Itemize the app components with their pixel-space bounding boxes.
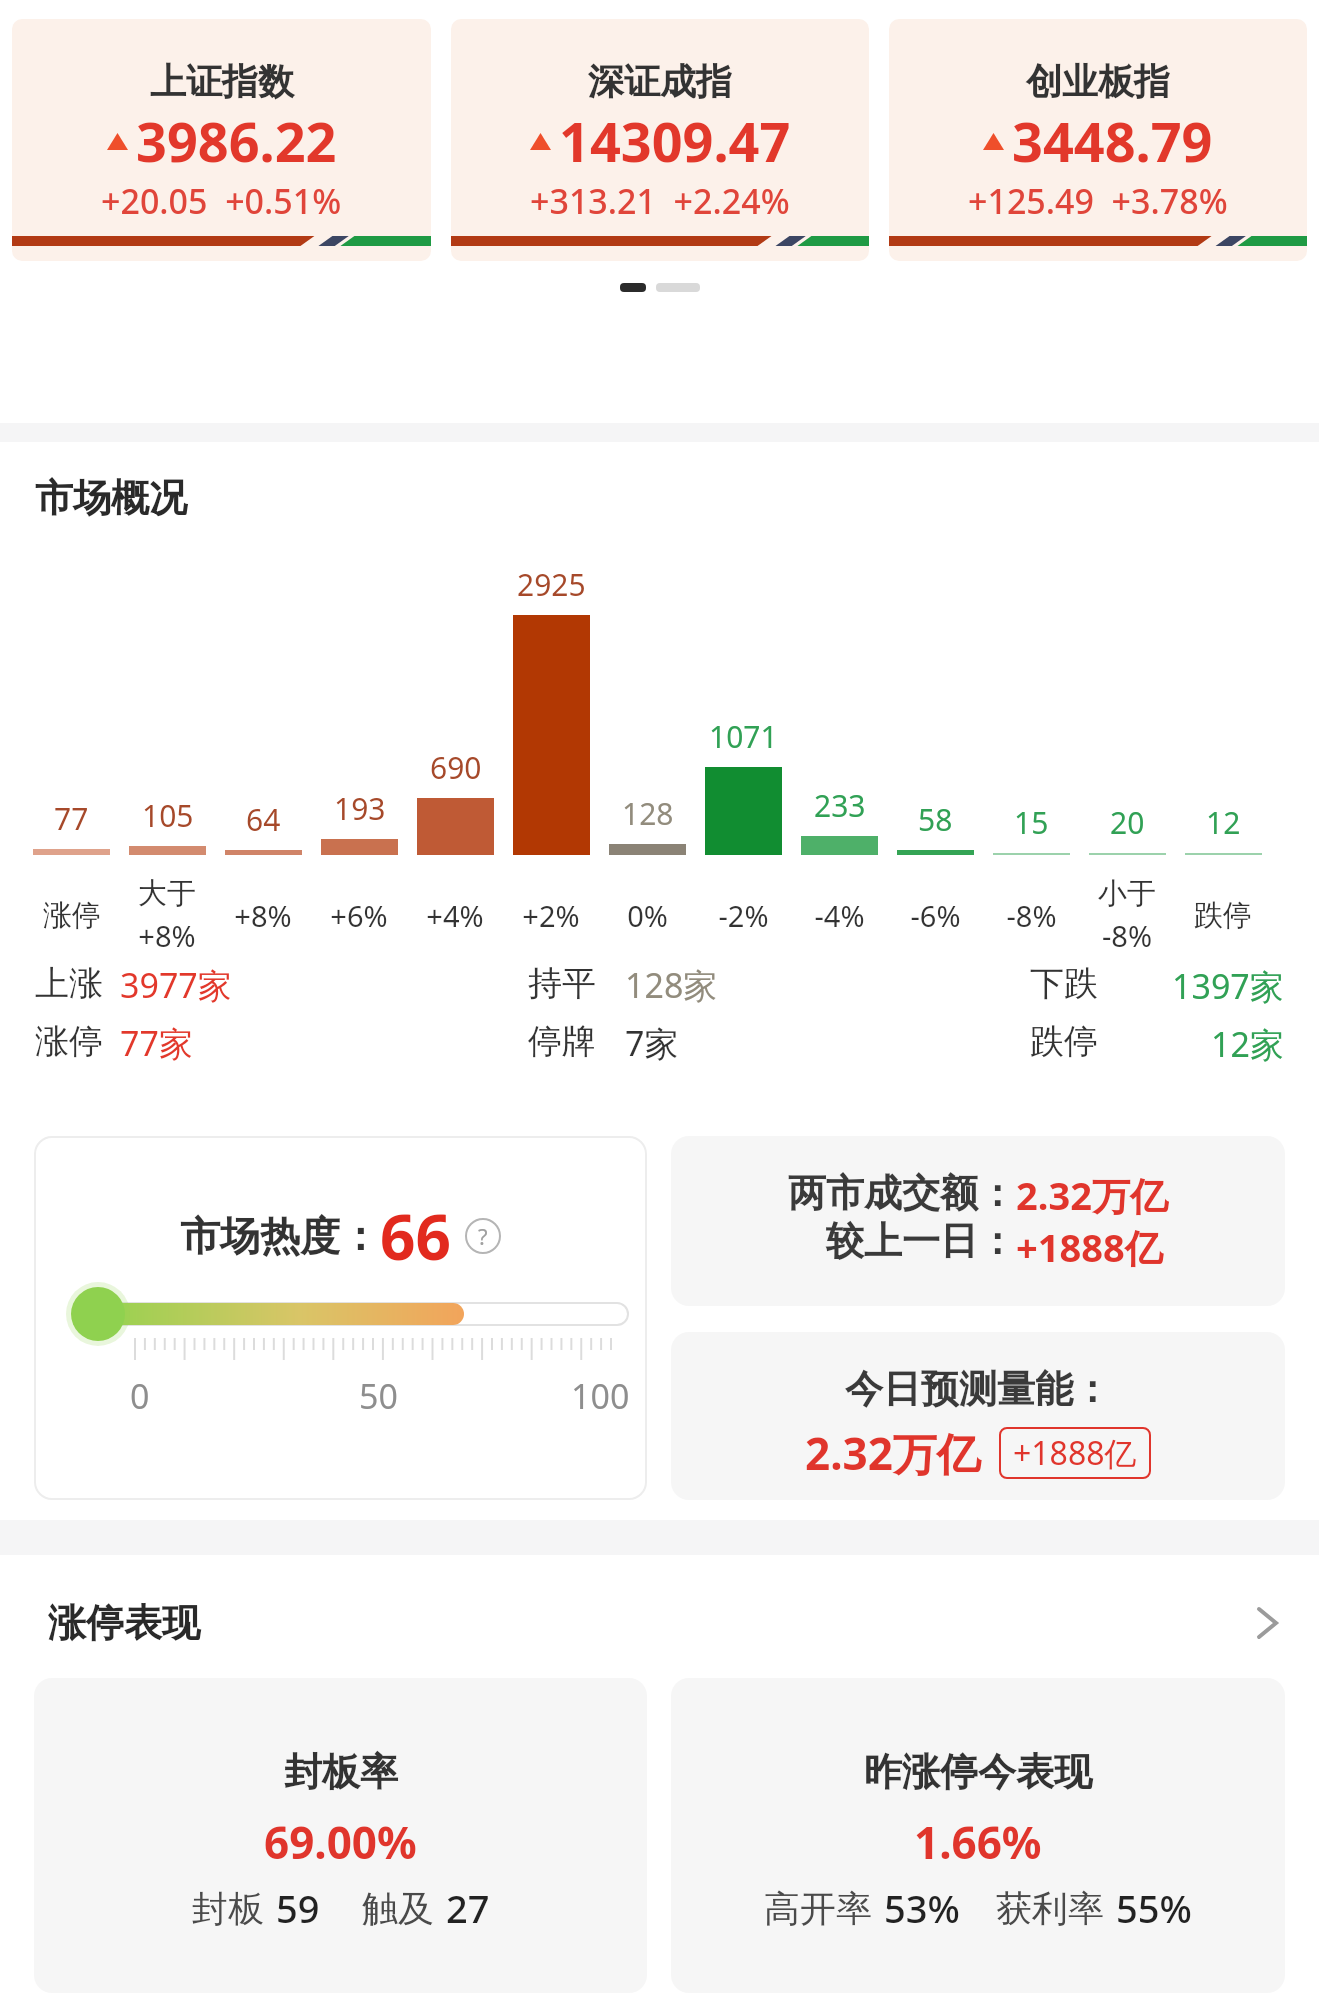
staticText: 27: [446, 1882, 490, 1934]
button[interactable]: 昨涨停今表现: [671, 1678, 1285, 1993]
staticText: 2.32万亿: [805, 1423, 981, 1483]
staticText: 100: [571, 1373, 630, 1419]
staticText: 上证指数: [150, 59, 294, 104]
staticText: 128: [622, 793, 674, 834]
staticText: 2925: [517, 564, 586, 605]
staticText: 1397家: [1172, 963, 1284, 1009]
staticText: 77家: [120, 1020, 193, 1066]
staticText: 12家: [1211, 1021, 1284, 1067]
staticText: 69.00%: [264, 1812, 417, 1872]
staticText: 小于 -8%: [1098, 875, 1156, 955]
staticText: 7家: [625, 1020, 679, 1066]
staticText: 市场热度：: [180, 1211, 380, 1261]
staticText: 58: [918, 799, 953, 840]
staticText: +20.05 +0.51%: [101, 178, 342, 224]
staticText: 较上一日：: [826, 1217, 1016, 1265]
staticText: 封板率: [284, 1748, 398, 1796]
staticText: -4%: [814, 896, 865, 935]
staticText: 20: [1110, 802, 1145, 843]
staticText: 持平: [528, 962, 596, 1005]
staticText: 105: [142, 795, 194, 836]
staticText: 12: [1206, 802, 1241, 843]
staticText: 下跌: [1030, 962, 1098, 1005]
staticText: +313.21 +2.24%: [530, 178, 790, 224]
button[interactable]: 两市成交额：: [671, 1136, 1285, 1306]
staticText: -2%: [718, 896, 769, 935]
staticText: 128家: [625, 962, 718, 1008]
staticText: 停牌: [528, 1020, 596, 1063]
staticText: 涨停: [43, 897, 101, 934]
button[interactable]: 涨停表现: [48, 1599, 1279, 1647]
staticText: 跌停: [1194, 897, 1252, 934]
staticText: -8%: [1006, 896, 1057, 935]
staticText: 55%: [1116, 1882, 1192, 1934]
staticText: 233: [814, 785, 866, 826]
staticText: 64: [246, 799, 281, 840]
staticText: +125.49 +3.78%: [968, 178, 1228, 224]
staticText: 获利率: [996, 1886, 1104, 1931]
staticText: 深证成指: [588, 59, 732, 104]
staticText: 1071: [709, 716, 778, 757]
staticText: 两市成交额：: [788, 1169, 1016, 1217]
staticText: -6%: [910, 896, 961, 935]
staticText: +1888亿: [1013, 1431, 1137, 1475]
staticText: 昨涨停今表现: [864, 1748, 1092, 1796]
staticText: 创业板指: [1026, 59, 1170, 104]
staticText: +6%: [330, 896, 388, 935]
staticText: 1.66%: [914, 1812, 1042, 1872]
staticText: 3977家: [120, 962, 232, 1008]
staticText: 涨停表现: [48, 1599, 200, 1647]
staticText: 53%: [884, 1882, 960, 1934]
staticText: 市场概况: [35, 474, 187, 522]
button[interactable]: 上证指数: [12, 19, 431, 261]
button[interactable]: 市场热度：: [34, 1136, 647, 1500]
staticText: 今日预测量能：: [845, 1365, 1111, 1413]
staticText: 大于 +8%: [138, 875, 196, 955]
staticText: 跌停: [1030, 1020, 1098, 1063]
staticText: ?: [478, 1221, 488, 1251]
staticText: 上涨: [35, 962, 103, 1005]
staticText: +8%: [234, 896, 292, 935]
button[interactable]: 封板率: [34, 1678, 647, 1993]
staticText: 59: [276, 1882, 320, 1934]
staticText: 封板: [192, 1886, 264, 1931]
button[interactable]: 创业板指: [889, 19, 1307, 261]
staticText: 涨停: [35, 1020, 103, 1063]
button[interactable]: 深证成指: [451, 19, 869, 261]
staticText: 触及: [362, 1886, 434, 1931]
staticText: 2.32万亿: [1016, 1169, 1168, 1221]
staticText: 193: [334, 788, 386, 829]
staticText: 690: [430, 747, 482, 788]
staticText: 77: [54, 798, 89, 839]
staticText: 高开率: [764, 1886, 872, 1931]
staticText: 15: [1014, 802, 1049, 843]
staticText: 14309.47: [559, 104, 791, 178]
staticText: 0%: [627, 896, 668, 935]
staticText: +4%: [426, 896, 484, 935]
staticText: +2%: [522, 896, 580, 935]
staticText: +1888亿: [1016, 1221, 1163, 1273]
staticText: 3986.22: [136, 104, 337, 178]
staticText: 50: [359, 1373, 398, 1419]
staticText: 3448.79: [1012, 104, 1213, 178]
button[interactable]: 今日预测量能：: [671, 1332, 1285, 1500]
staticText: 66: [380, 1194, 451, 1278]
staticText: 0: [130, 1373, 150, 1419]
